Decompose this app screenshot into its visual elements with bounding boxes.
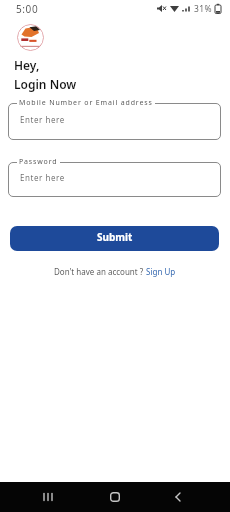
staticText: Don't have an account ? — [54, 266, 146, 277]
button[interactable]: Enter here — [8, 103, 221, 140]
button[interactable]: Submit — [10, 226, 219, 251]
staticText: Enter here — [20, 114, 65, 125]
staticText: 5:00 — [16, 2, 39, 16]
staticText: Password — [19, 157, 58, 167]
button[interactable]: Sign Up — [146, 266, 176, 277]
staticText: Login Now — [14, 76, 77, 92]
staticText: Mobile Number or Email address — [19, 98, 153, 108]
staticText: Hey, — [14, 57, 40, 73]
staticText: Submit — [97, 230, 133, 244]
button[interactable]: Enter here — [8, 162, 221, 197]
staticText: 31% — [194, 3, 212, 15]
button[interactable] — [30, 482, 66, 512]
staticText: Enter here — [20, 172, 65, 183]
button[interactable] — [97, 482, 133, 512]
button[interactable] — [160, 482, 196, 512]
